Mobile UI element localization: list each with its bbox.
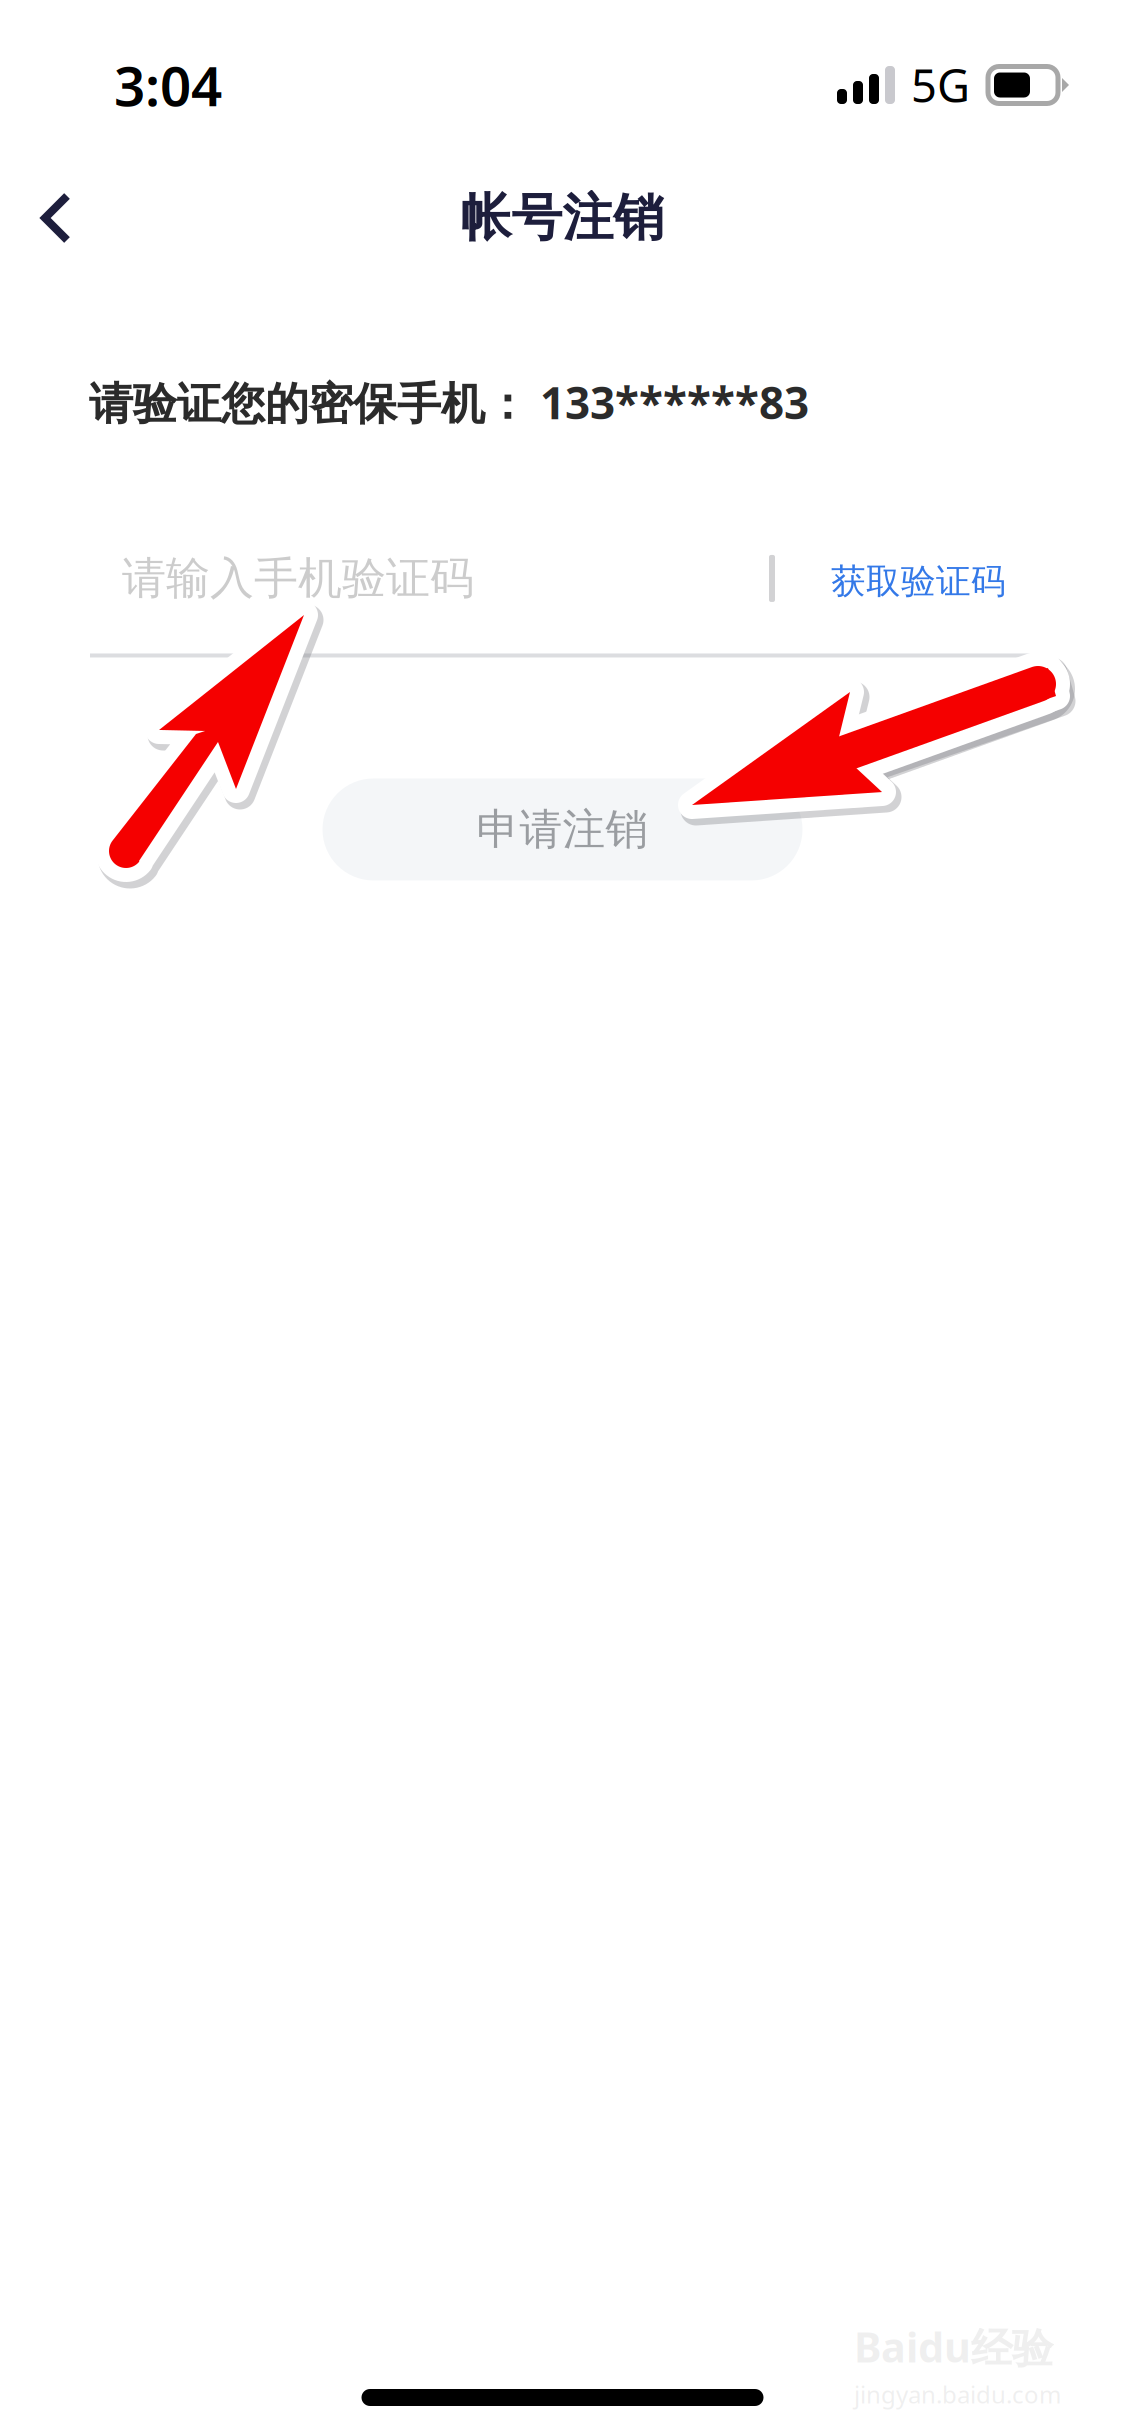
staticText: 请验证您的密保手机： 133******83 — [89, 373, 809, 431]
staticText: 5G — [911, 55, 970, 115]
button[interactable]: 获取验证码 — [775, 554, 1037, 603]
staticText: 获取验证码 — [831, 560, 1006, 603]
staticText: 请输入手机验证码 — [122, 551, 474, 605]
staticText: 3:04 — [114, 49, 222, 121]
staticText: 帐号注销 — [460, 187, 664, 249]
button[interactable]: 申请注销 — [322, 778, 802, 880]
staticText: 申请注销 — [476, 803, 648, 856]
button[interactable]: Back — [0, 162, 112, 274]
staticText: Baidu经验 — [854, 2319, 1053, 2374]
staticText: jingyan.baidu.com — [854, 2378, 1061, 2410]
